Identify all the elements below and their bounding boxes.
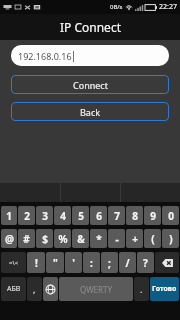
- button[interactable]: #: [18, 229, 35, 248]
- staticText: 0: [168, 209, 174, 223]
- button[interactable]: Connect: [11, 75, 169, 94]
- staticText: -: [115, 232, 119, 246]
- button[interactable]: Symbols: [1, 252, 26, 273]
- staticText: 3: [42, 209, 48, 223]
- staticText: +: [132, 232, 138, 246]
- staticText: 7: [114, 209, 120, 223]
- staticText: 1: [6, 209, 12, 223]
- button[interactable]: *: [90, 229, 107, 248]
- staticText: 9: [150, 209, 156, 223]
- staticText: ?: [143, 256, 148, 270]
- staticText: @: [5, 232, 14, 246]
- button[interactable]: QWERTY: [59, 277, 133, 301]
- staticText: $: [42, 232, 48, 246]
- button[interactable]: 3: [36, 206, 53, 225]
- staticText: *: [96, 232, 102, 246]
- button[interactable]: !: [27, 252, 45, 273]
- button[interactable]: 192.168.0.16: [11, 45, 169, 66]
- staticText: QWERTY: [80, 284, 113, 295]
- button[interactable]: ;: [101, 252, 118, 273]
- staticText: 8: [132, 209, 138, 223]
- staticText: :: [90, 256, 93, 270]
- button[interactable]: 8: [126, 206, 143, 225]
- staticText: ': [72, 256, 75, 270]
- button[interactable]: 5: [72, 206, 89, 225]
- staticText: 6: [96, 209, 102, 223]
- button[interactable]: Back: [11, 102, 169, 121]
- button[interactable]: 9: [144, 206, 161, 225]
- button[interactable]: .: [134, 277, 149, 301]
- button[interactable]: ': [65, 252, 82, 273]
- staticText: ": [53, 256, 58, 270]
- button[interactable]: 0: [162, 206, 179, 225]
- button[interactable]: ": [46, 252, 64, 273]
- button[interactable]: 6: [90, 206, 107, 225]
- staticText: АБВ: [7, 284, 21, 294]
- staticText: 192.168.0.16: [18, 50, 72, 62]
- staticText: #: [23, 232, 30, 246]
- staticText: %: [58, 232, 68, 246]
- staticText: ,: [33, 283, 36, 295]
- staticText: 0B/s: [110, 3, 123, 11]
- staticText: /: [125, 256, 130, 270]
- staticText: 4: [60, 209, 66, 223]
- button[interactable]: :: [83, 252, 100, 273]
- button[interactable]: ,: [27, 277, 42, 301]
- button[interactable]: ): [162, 229, 179, 248]
- button[interactable]: 2: [18, 206, 35, 225]
- staticText: .: [140, 283, 143, 295]
- button[interactable]: /: [119, 252, 136, 273]
- staticText: ;: [108, 256, 111, 270]
- button[interactable]: +: [126, 229, 143, 248]
- button[interactable]: Backspace: [155, 252, 179, 273]
- button[interactable]: &: [72, 229, 89, 248]
- staticText: =\<: [9, 259, 19, 267]
- button[interactable]: -: [108, 229, 125, 248]
- button[interactable]: АБВ: [1, 277, 26, 301]
- staticText: 2: [24, 209, 30, 223]
- staticText: (: [151, 232, 155, 246]
- staticText: 22:27: [159, 2, 177, 12]
- button[interactable]: Готово: [150, 277, 179, 301]
- button[interactable]: @: [1, 229, 17, 248]
- staticText: ): [169, 232, 173, 246]
- staticText: &: [77, 232, 85, 246]
- button[interactable]: ?: [137, 252, 154, 273]
- staticText: Back: [80, 106, 101, 118]
- staticText: IP Connect: [60, 19, 121, 35]
- staticText: Connect: [73, 79, 108, 91]
- button[interactable]: Change language: [43, 277, 58, 301]
- staticText: !: [35, 256, 38, 270]
- button[interactable]: $: [36, 229, 53, 248]
- button[interactable]: 1: [1, 206, 17, 225]
- staticText: 5: [78, 209, 84, 223]
- button[interactable]: 7: [108, 206, 125, 225]
- button[interactable]: 4: [54, 206, 71, 225]
- button[interactable]: (: [144, 229, 161, 248]
- staticText: Готово: [152, 284, 177, 294]
- button[interactable]: %: [54, 229, 71, 248]
